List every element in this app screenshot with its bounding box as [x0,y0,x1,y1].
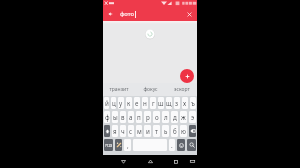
staticText: щ [166,99,172,107]
staticText: ж [181,113,186,121]
button[interactable]: транзит [103,83,135,96]
button[interactable]: м [136,125,142,137]
button[interactable]: Clear [183,7,196,21]
button[interactable]: ч [120,125,126,137]
staticText: у [119,99,123,107]
staticText: я [113,127,117,135]
button[interactable]: х [182,97,188,109]
staticText: ъ [191,99,195,107]
staticText: ы [113,113,118,121]
staticText: транзит [109,86,129,93]
staticText: б [173,127,177,135]
button[interactable]: Back [103,7,117,21]
button[interactable]: ж [180,111,187,123]
staticText: ю [181,127,186,135]
button[interactable]: , [124,139,131,151]
button[interactable]: л [162,111,169,123]
button[interactable]: Symbols [104,139,113,151]
staticText: з [175,99,179,107]
button[interactable]: р [144,111,151,123]
staticText: р [146,113,150,121]
staticText: н [143,99,147,107]
button[interactable]: ю [180,125,187,137]
staticText: о [155,113,159,121]
button[interactable]: ф [104,111,110,123]
button[interactable]: Home [145,156,156,167]
button[interactable]: Recents [170,156,181,167]
button[interactable]: з [174,97,180,109]
staticText: эскорт [174,86,190,93]
button[interactable]: э [189,111,196,123]
staticText: с [129,127,133,135]
button[interactable]: Backspace [189,125,196,137]
staticText: п [137,113,141,121]
button[interactable]: с [128,125,134,137]
button[interactable]: в [120,111,126,123]
button[interactable]: . [169,139,175,151]
button[interactable]: п [136,111,142,123]
staticText: э [191,113,195,121]
button[interactable]: я [112,125,118,137]
staticText: й [105,99,109,107]
staticText: ь [164,127,168,135]
button[interactable]: Voice [115,139,122,151]
staticText: г [152,99,155,107]
button[interactable]: е [134,97,140,109]
staticText: ?123 [105,143,113,148]
button[interactable]: щ [166,97,172,109]
button[interactable]: к [126,97,132,109]
button[interactable]: ь [162,125,169,137]
staticText: к [127,99,131,107]
button[interactable]: Shift [104,125,110,137]
staticText: в [121,113,125,121]
button[interactable]: Back [118,156,129,167]
button[interactable]: д [171,111,178,123]
button[interactable]: б [171,125,178,137]
staticText: , [127,141,129,149]
staticText: фото [120,10,134,18]
button[interactable]: й [104,97,109,109]
button[interactable]: фокус [135,83,166,96]
button[interactable]: ц [111,97,116,109]
button[interactable]: ъ [190,97,196,109]
staticText: . [171,141,173,149]
staticText: ш [158,99,164,107]
staticText: е [135,99,139,107]
button[interactable]: Add [180,69,194,83]
button[interactable]: г [150,97,156,109]
button[interactable]: и [144,125,151,137]
staticText: ч [121,127,125,135]
staticText: фокус [143,86,158,93]
button[interactable]: Hide keyboard [187,156,198,167]
button[interactable]: эскорт [166,83,197,96]
staticText: ц [112,99,116,107]
button[interactable]: у [118,97,124,109]
button[interactable]: н [142,97,148,109]
button[interactable]: ы [112,111,118,123]
staticText: и [146,127,150,135]
button[interactable]: Emoji [177,139,185,151]
staticText: д [173,113,177,121]
button[interactable]: а [128,111,134,123]
staticText: л [164,113,168,121]
staticText: ф [105,113,110,121]
button[interactable]: ш [158,97,164,109]
button[interactable]: т [153,125,160,137]
button[interactable]: о [153,111,160,123]
staticText: а [129,113,133,121]
staticText: т [155,127,158,135]
button[interactable]: Search [187,139,196,151]
staticText: х [183,99,187,107]
staticText: м [137,127,142,135]
